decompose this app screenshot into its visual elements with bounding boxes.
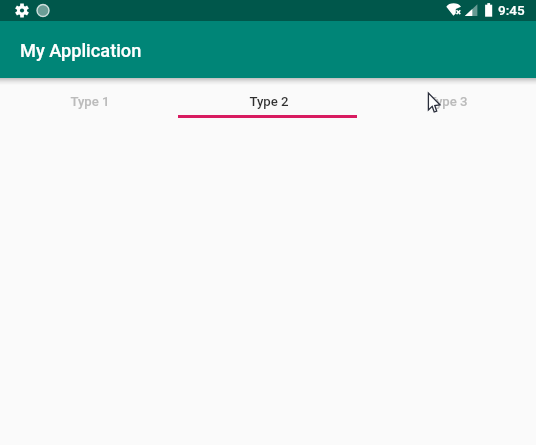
button[interactable]: Type 2 (178, 78, 357, 118)
staticText: 9:45 (498, 2, 525, 18)
staticText: My Application (20, 40, 142, 61)
staticText: Type 3 (428, 94, 468, 109)
button[interactable]: Type 1 (0, 78, 178, 118)
staticText: Type 2 (249, 94, 289, 109)
staticText: Type 1 (70, 94, 110, 109)
button[interactable]: Type 3 (357, 78, 536, 118)
other: Status bar: settings, sync, no Wi-Fi, si… (0, 0, 536, 21)
